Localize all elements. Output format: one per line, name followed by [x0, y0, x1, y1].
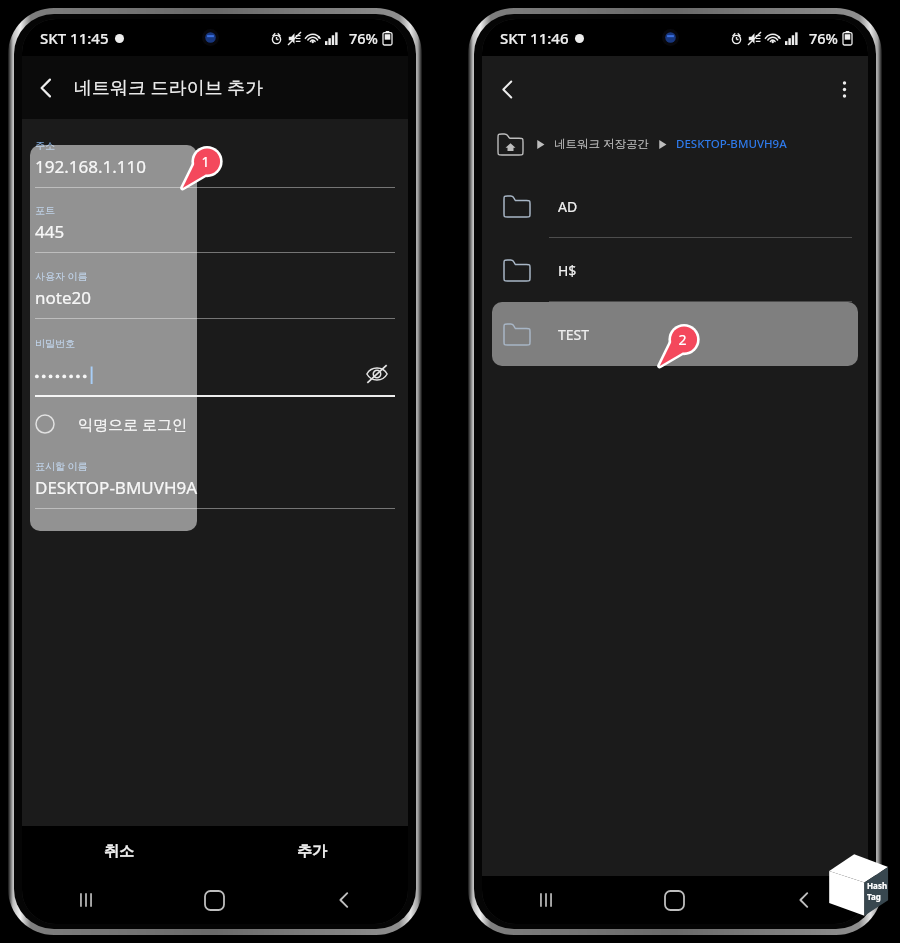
staticText: 비밀번호 — [35, 337, 75, 350]
staticText: Hash — [867, 880, 888, 891]
staticText: AD — [558, 197, 578, 216]
staticText: 2 — [678, 330, 687, 349]
button[interactable]: Home — [150, 876, 279, 924]
staticText: 표시할 이름 — [35, 459, 88, 473]
staticText: H$ — [558, 261, 577, 280]
button[interactable]: 추가 — [215, 826, 408, 876]
staticText: 192.168.1.110 — [35, 155, 146, 178]
staticText: SKT 11:45 — [40, 28, 109, 48]
staticText: Tag — [867, 891, 881, 902]
staticText: 추가 — [297, 842, 327, 861]
button[interactable]: Home — [610, 876, 739, 924]
button[interactable]: 네트워크 저장공간 — [554, 136, 649, 152]
staticText: 네트워크 드라이브 추가 — [74, 75, 264, 100]
staticText: SKT 11:46 — [500, 28, 569, 48]
button[interactable]: Back — [279, 876, 408, 924]
staticText: 취소 — [104, 842, 134, 861]
button[interactable]: Recent apps — [22, 876, 150, 924]
staticText: 주소 — [35, 139, 55, 152]
staticText: 76% — [349, 28, 378, 48]
staticText: DESKTOP-BMUVH9A — [35, 476, 198, 499]
staticText: 사용자 이름 — [35, 269, 88, 283]
staticText: 익명으로 로그인 — [78, 414, 187, 434]
staticText: 포트 — [35, 204, 55, 217]
button[interactable]: 취소 — [22, 826, 215, 876]
staticText: note20 — [35, 286, 91, 309]
button[interactable]: DESKTOP-BMUVH9A — [676, 136, 787, 152]
button[interactable]: Back — [739, 876, 868, 924]
button[interactable]: TEST — [492, 302, 858, 366]
button[interactable]: H$ — [492, 238, 858, 302]
button[interactable]: AD — [492, 174, 858, 238]
button[interactable]: 익명으로 로그인 — [35, 397, 395, 451]
button[interactable]: More options — [820, 65, 868, 113]
button[interactable]: Recent apps — [482, 876, 610, 924]
staticText: 445 — [35, 220, 65, 243]
button[interactable]: Home folder — [497, 131, 524, 158]
button[interactable]: Show password — [359, 356, 395, 392]
button[interactable]: Back — [22, 64, 70, 112]
staticText: TEST — [558, 325, 590, 344]
staticText: 76% — [809, 28, 838, 48]
staticText: 1 — [201, 152, 210, 171]
button[interactable]: Back — [482, 64, 532, 114]
